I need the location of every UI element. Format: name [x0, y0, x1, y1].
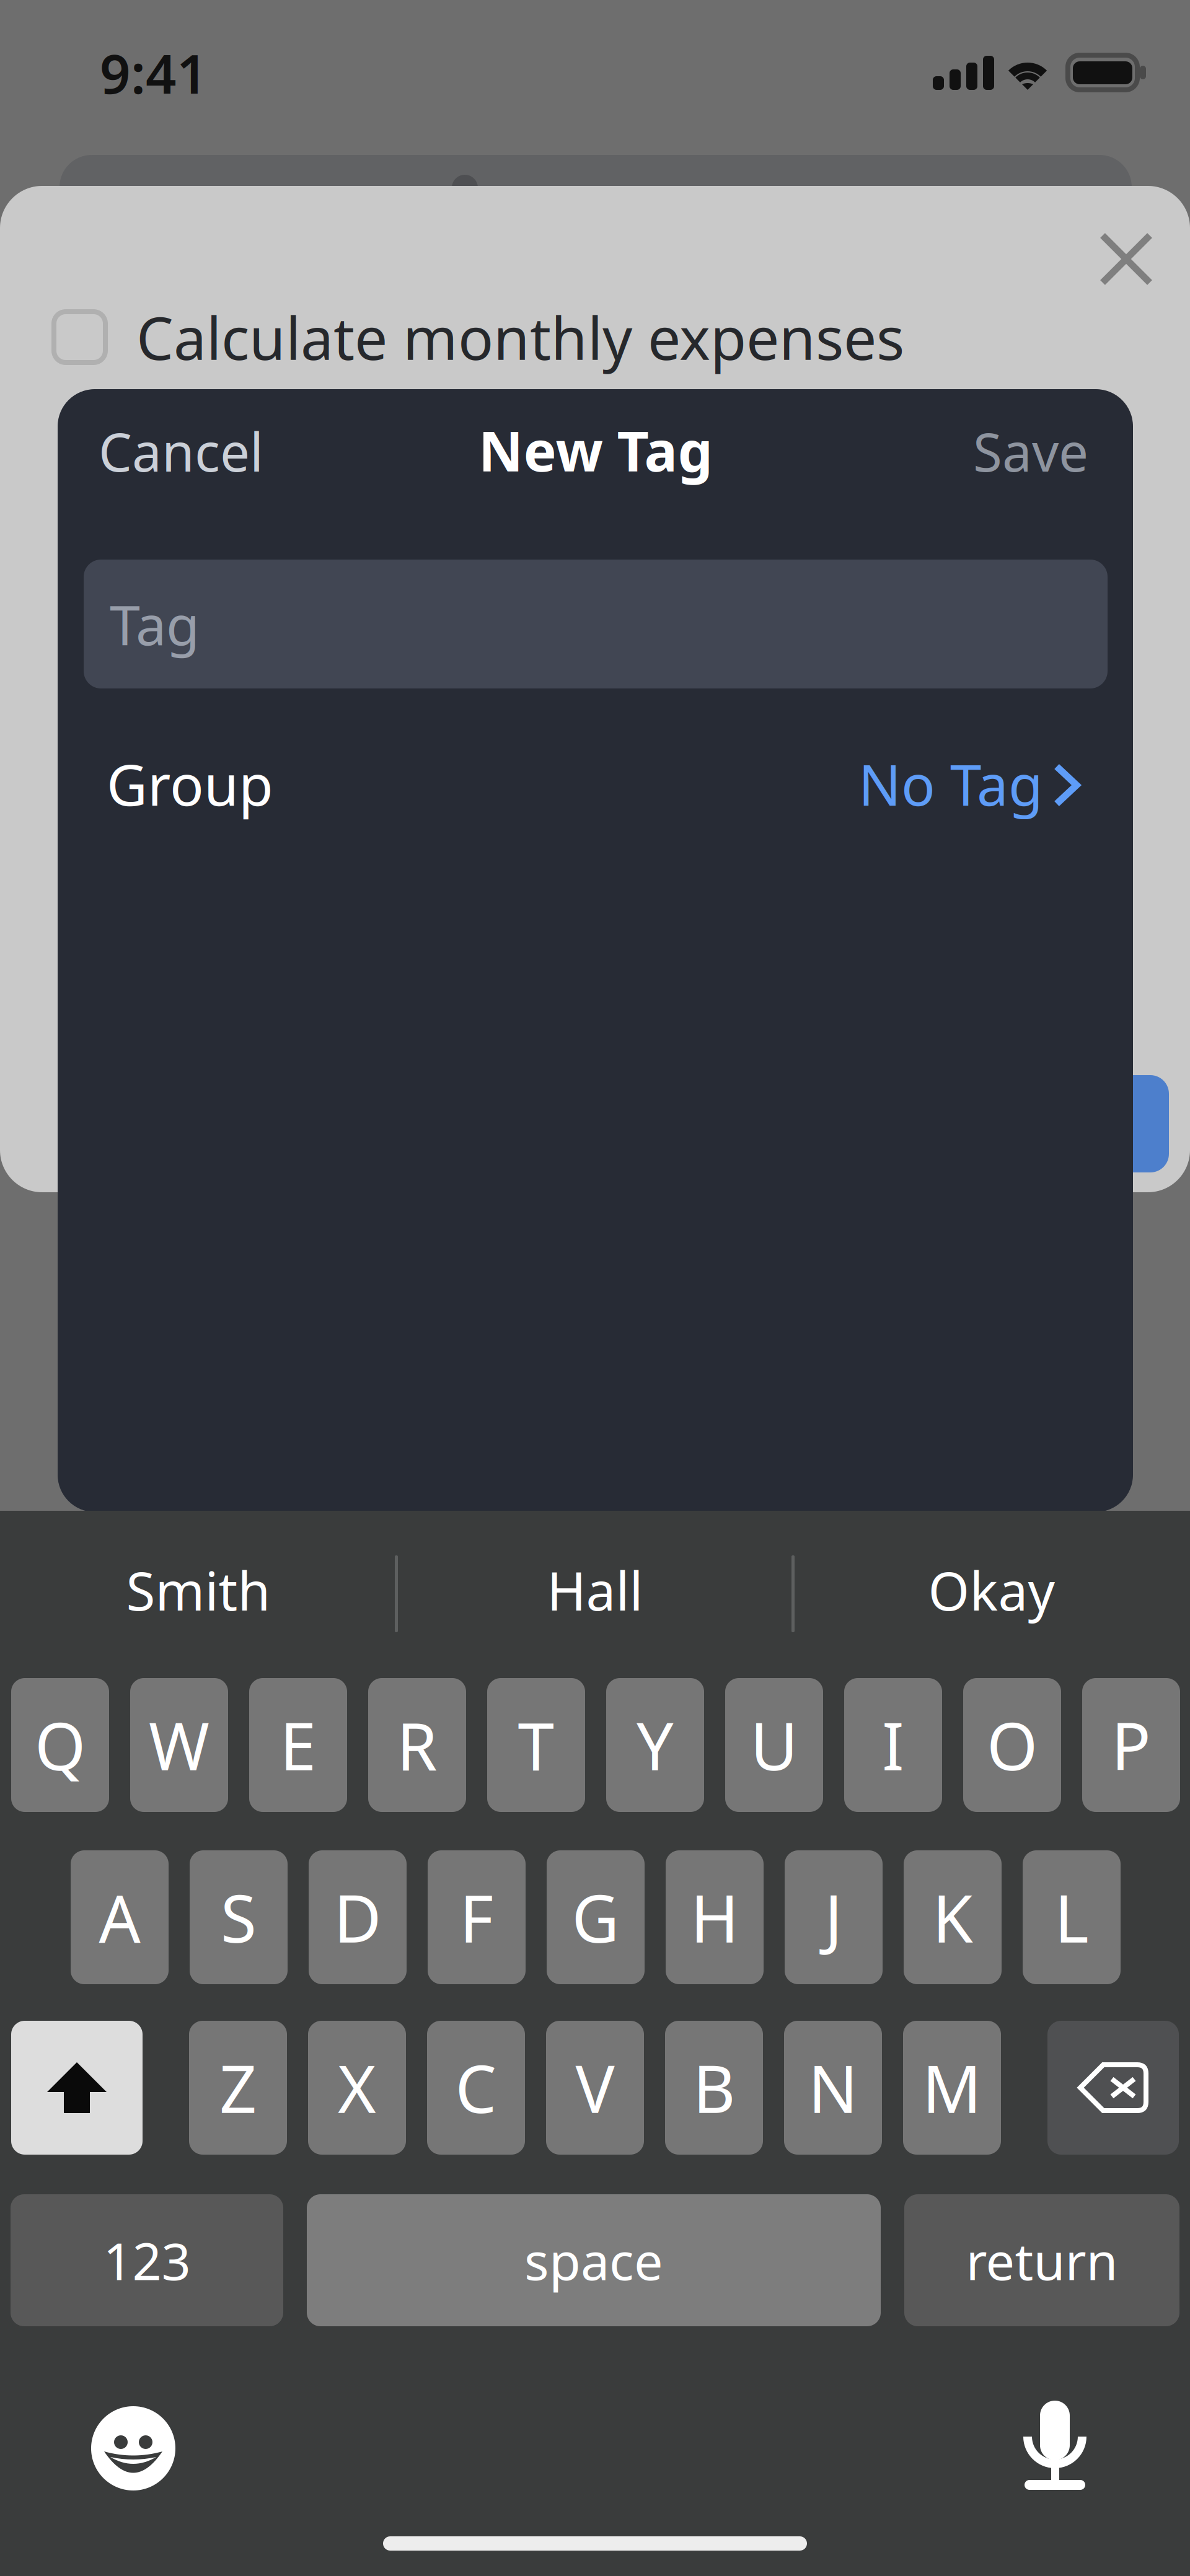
staticText: Calculate monthly expenses — [136, 298, 904, 376]
button[interactable]: return — [904, 2194, 1179, 2326]
button[interactable]: Group — [107, 747, 1077, 821]
button[interactable]: space — [307, 2194, 881, 2326]
button[interactable]: A — [71, 1850, 169, 1984]
staticText: 9:41 — [100, 37, 208, 109]
button[interactable]: Delete — [1047, 2021, 1179, 2155]
staticText: B — [693, 2044, 735, 2131]
button[interactable]: K — [904, 1850, 1002, 1984]
button[interactable]: D — [309, 1850, 407, 1984]
button[interactable]: Cancel — [99, 414, 303, 488]
button[interactable]: Smith — [0, 1511, 397, 1669]
button[interactable]: J — [785, 1850, 883, 1984]
button[interactable]: Okay — [793, 1511, 1190, 1669]
staticText: return — [966, 2226, 1118, 2294]
staticText: V — [575, 2044, 615, 2131]
button[interactable]: S — [190, 1850, 288, 1984]
staticText: L — [1055, 1874, 1089, 1961]
staticText: A — [99, 1874, 140, 1961]
staticText: Save — [973, 416, 1088, 486]
button[interactable]: M — [903, 2021, 1001, 2155]
staticText: O — [987, 1702, 1038, 1788]
button[interactable]: Hall — [397, 1511, 793, 1669]
staticText: D — [334, 1874, 381, 1961]
button[interactable]: V — [546, 2021, 644, 2155]
staticText: K — [932, 1874, 973, 1961]
staticText: Group — [107, 747, 273, 821]
button[interactable]: E — [249, 1678, 347, 1812]
staticText: P — [1111, 1702, 1151, 1788]
staticText: R — [397, 1702, 438, 1788]
button[interactable]: X — [308, 2021, 406, 2155]
button[interactable]: T — [487, 1678, 585, 1812]
staticText: M — [922, 2044, 982, 2131]
button[interactable]: Save — [915, 414, 1088, 488]
staticText: C — [455, 2044, 497, 2131]
staticText: I — [882, 1702, 904, 1788]
staticText: Tag — [110, 588, 200, 660]
staticText: Q — [35, 1702, 86, 1788]
staticText: H — [690, 1874, 739, 1961]
button[interactable]: F — [428, 1850, 526, 1984]
staticText: Y — [637, 1702, 674, 1788]
staticText: Smith — [126, 1555, 271, 1625]
button[interactable]: I — [844, 1678, 942, 1812]
button[interactable]: Close — [1077, 209, 1176, 309]
staticText: 123 — [103, 2226, 191, 2294]
button[interactable]: Y — [606, 1678, 704, 1812]
button[interactable]: N — [784, 2021, 882, 2155]
button[interactable]: Shift — [11, 2021, 143, 2155]
staticText: Z — [219, 2044, 257, 2131]
button[interactable]: O — [963, 1678, 1061, 1812]
button[interactable]: G — [547, 1850, 645, 1984]
staticText: E — [280, 1702, 316, 1788]
staticText: U — [750, 1702, 798, 1788]
staticText: W — [149, 1702, 209, 1788]
staticText: Hall — [547, 1555, 643, 1625]
button[interactable]: Z — [189, 2021, 287, 2155]
button[interactable]: Emoji keyboard — [91, 2406, 175, 2490]
staticText: Okay — [928, 1555, 1055, 1625]
staticText: N — [808, 2044, 858, 2131]
staticText: T — [518, 1702, 554, 1788]
staticText: F — [460, 1874, 494, 1961]
staticText: G — [572, 1874, 619, 1961]
staticText: S — [221, 1874, 257, 1961]
button[interactable]: C — [427, 2021, 525, 2155]
staticText: Cancel — [99, 416, 263, 486]
button[interactable]: R — [368, 1678, 466, 1812]
button[interactable]: B — [665, 2021, 763, 2155]
button[interactable]: W — [130, 1678, 228, 1812]
staticText: X — [338, 2044, 376, 2131]
staticText: No Tag — [858, 747, 1043, 821]
button[interactable]: H — [666, 1850, 764, 1984]
button[interactable]: Dictation — [1024, 2401, 1086, 2491]
button[interactable]: 123 — [11, 2194, 283, 2326]
button[interactable]: U — [725, 1678, 823, 1812]
button[interactable]: L — [1023, 1850, 1121, 1984]
button[interactable]: Q — [11, 1678, 109, 1812]
staticText: J — [825, 1874, 843, 1961]
staticText: New Tag — [478, 413, 712, 487]
button[interactable]: Calculate monthly expenses — [54, 300, 1108, 374]
button[interactable]: P — [1082, 1678, 1180, 1812]
staticText: space — [524, 2226, 663, 2294]
